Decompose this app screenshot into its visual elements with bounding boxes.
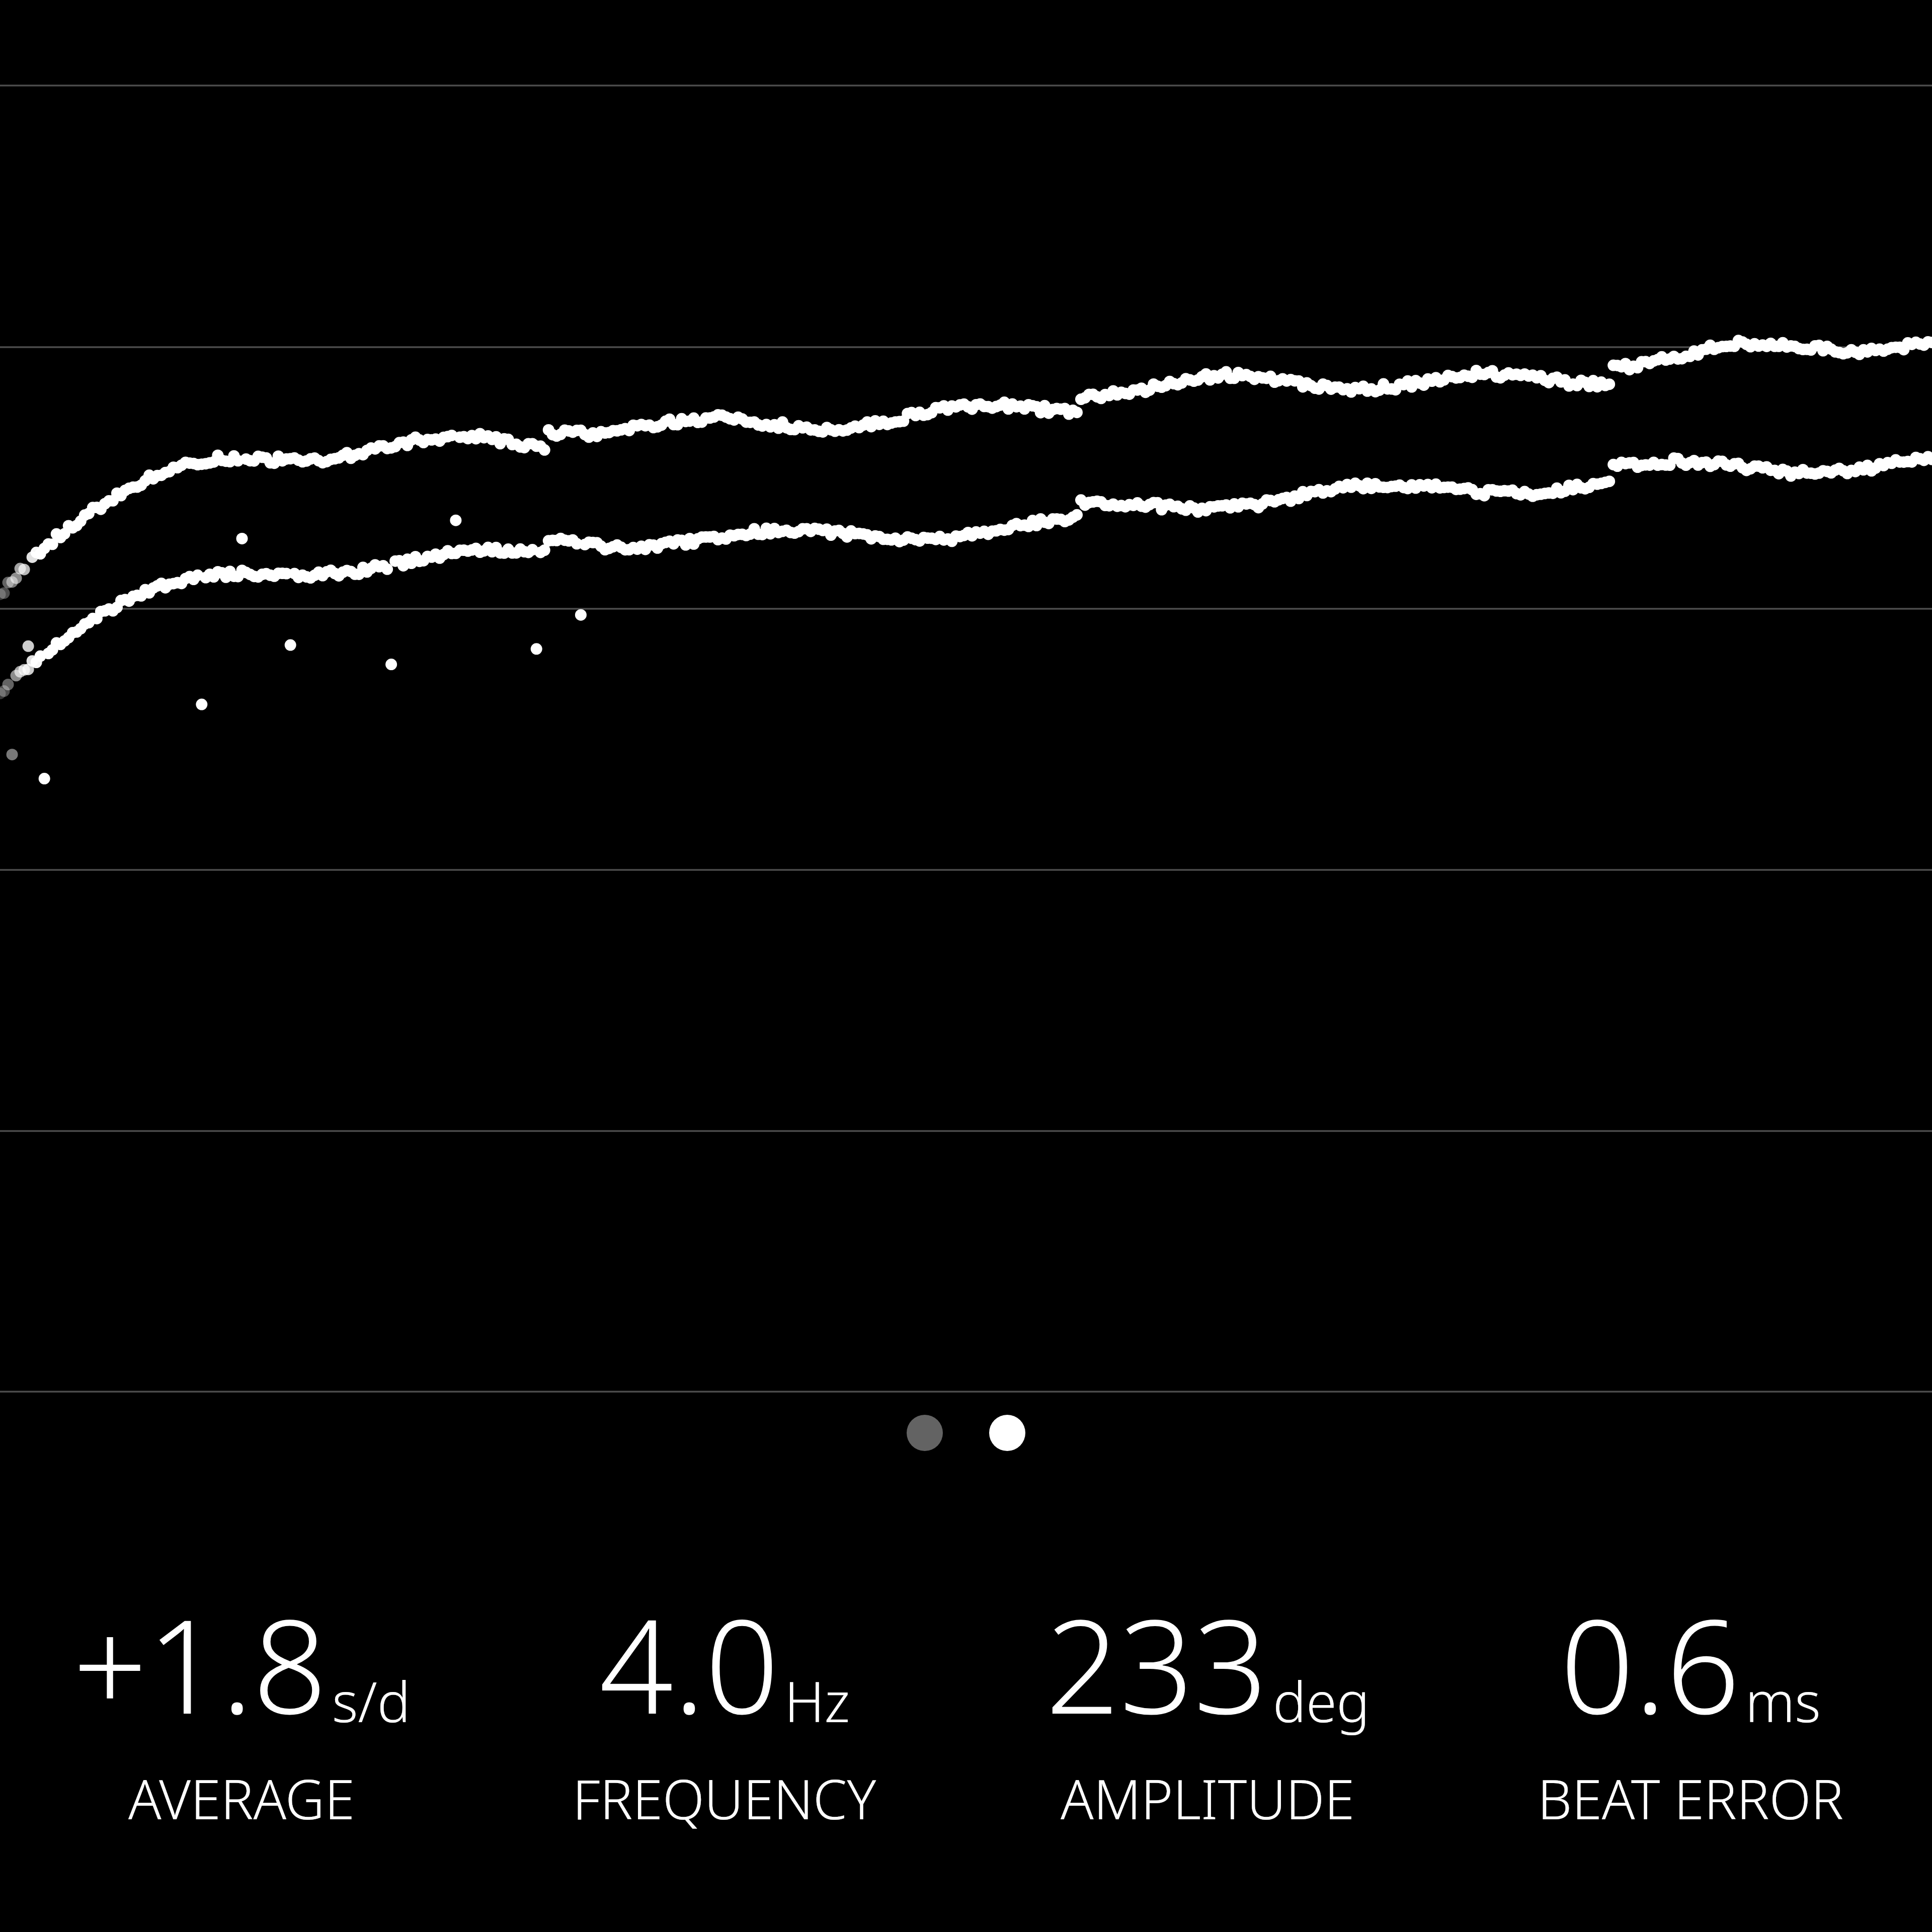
button[interactable]: 4.0: [483, 1575, 966, 1836]
staticText: +1.8: [73, 1575, 327, 1751]
staticText: s/d: [332, 1663, 411, 1738]
staticText: BEAT ERROR: [1538, 1761, 1843, 1835]
staticText: AVERAGE: [128, 1761, 355, 1835]
button[interactable]: +1.8: [0, 1575, 483, 1836]
staticText: AMPLITUDE: [1061, 1761, 1355, 1835]
staticText: FREQUENCY: [573, 1761, 876, 1835]
staticText: Hz: [784, 1663, 850, 1738]
staticText: 233: [1045, 1575, 1268, 1751]
staticText: ms: [1745, 1663, 1821, 1738]
button[interactable]: 0.6: [1449, 1575, 1932, 1836]
button[interactable]: 233: [966, 1575, 1449, 1836]
staticText: 4.0: [599, 1575, 779, 1751]
staticText: 0.6: [1560, 1575, 1740, 1751]
staticText: deg: [1273, 1663, 1370, 1738]
button[interactable]: Page indicator, page 2 of 2: [845, 1388, 1087, 1478]
